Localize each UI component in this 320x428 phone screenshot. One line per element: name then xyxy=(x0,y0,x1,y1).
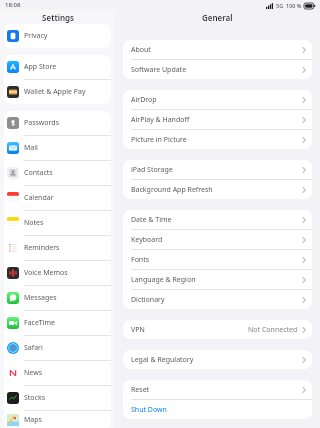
staticText: 100 % xyxy=(286,2,302,9)
button[interactable]: AirPlay & Handoff xyxy=(123,110,312,129)
staticText: Messages xyxy=(24,293,57,303)
button[interactable]: Language & Region xyxy=(123,270,312,289)
staticText: 18:08 xyxy=(5,1,21,9)
staticText: Notes xyxy=(24,218,44,228)
button[interactable]: Safari xyxy=(4,336,111,360)
staticText: AirPlay & Handoff xyxy=(131,115,190,125)
staticText: Date & Time xyxy=(131,215,172,225)
staticText: Safari xyxy=(24,343,43,353)
staticText: Fonts xyxy=(131,255,150,265)
button[interactable]: Background App Refresh xyxy=(123,180,312,199)
button[interactable]: Maps xyxy=(4,411,111,428)
staticText: Background App Refresh xyxy=(131,185,213,195)
staticText: Not Connected xyxy=(248,325,298,335)
staticText: Shut Down xyxy=(131,405,167,415)
button[interactable]: AirDrop xyxy=(123,90,312,109)
staticText: Wallet & Apple Pay xyxy=(24,87,86,97)
button[interactable]: Stocks xyxy=(4,386,111,410)
staticText: iPad Storage xyxy=(131,165,173,175)
staticText: Privacy xyxy=(24,31,48,41)
staticText: Calendar xyxy=(24,193,54,203)
staticText: Maps xyxy=(24,415,42,425)
button[interactable]: Fonts xyxy=(123,250,312,269)
staticText: AirDrop xyxy=(131,95,157,105)
staticText: Keyboard xyxy=(131,235,163,245)
button[interactable]: Wallet & Apple Pay xyxy=(4,80,111,104)
staticText: VPN xyxy=(131,325,145,335)
button[interactable]: Shut Down xyxy=(123,400,312,419)
staticText: Contacts xyxy=(24,168,53,178)
button[interactable]: Mail xyxy=(4,136,111,160)
staticText: Dictionary xyxy=(131,295,165,305)
button[interactable]: App Store xyxy=(4,55,111,79)
staticText: Stocks xyxy=(24,393,46,403)
staticText: Legal & Regulatory xyxy=(131,355,194,365)
button[interactable]: News xyxy=(4,361,111,385)
button[interactable]: Dictionary xyxy=(123,290,312,309)
staticText: 5G xyxy=(276,2,284,9)
staticText: Language & Region xyxy=(131,275,196,285)
staticText: Settings xyxy=(42,12,74,23)
staticText: Reminders xyxy=(24,243,60,253)
staticText: App Store xyxy=(24,62,57,72)
button[interactable]: iPad Storage xyxy=(123,160,312,179)
staticText: Mail xyxy=(24,143,38,153)
button[interactable]: Voice Memos xyxy=(4,261,111,285)
staticText: Picture in Picture xyxy=(131,135,187,145)
button[interactable]: Legal & Regulatory xyxy=(123,350,312,369)
button[interactable]: Reset xyxy=(123,380,312,399)
button[interactable]: Passwords xyxy=(4,111,111,135)
staticText: Voice Memos xyxy=(24,268,68,278)
button[interactable]: About xyxy=(123,40,312,59)
staticText: General xyxy=(202,12,233,23)
button[interactable]: Software Update xyxy=(123,60,312,79)
staticText: Software Update xyxy=(131,65,187,75)
staticText: News xyxy=(24,368,42,378)
button[interactable]: Contacts xyxy=(4,161,111,185)
button[interactable]: Date & Time xyxy=(123,210,312,229)
button[interactable]: Privacy xyxy=(4,24,111,48)
staticText: FaceTime xyxy=(24,318,56,328)
staticText: Reset xyxy=(131,385,150,395)
button[interactable]: FaceTime xyxy=(4,311,111,335)
button[interactable]: Calendar xyxy=(4,186,111,210)
staticText: About xyxy=(131,45,151,55)
button[interactable]: Picture in Picture xyxy=(123,130,312,149)
button[interactable]: Keyboard xyxy=(123,230,312,249)
button[interactable]: Reminders xyxy=(4,236,111,260)
button[interactable]: Messages xyxy=(4,286,111,310)
button[interactable]: Notes xyxy=(4,211,111,235)
button[interactable]: VPN xyxy=(123,320,312,339)
staticText: Passwords xyxy=(24,118,60,128)
